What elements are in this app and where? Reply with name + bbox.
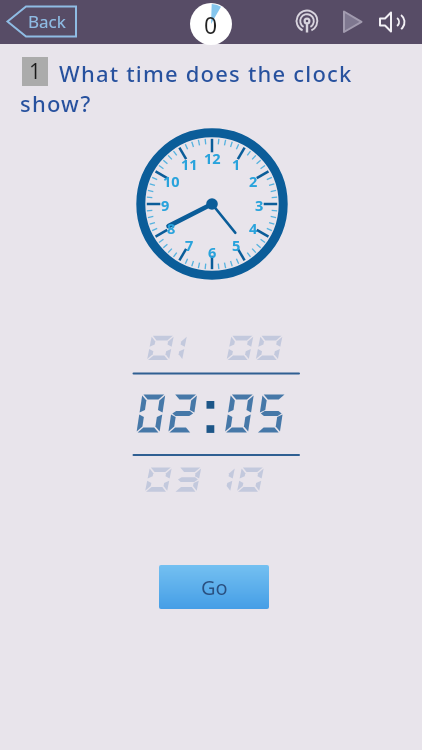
button[interactable] <box>377 8 407 38</box>
staticText: 1 <box>29 57 42 86</box>
staticText: 7 <box>185 235 194 253</box>
staticText: 0 <box>204 9 218 40</box>
staticText: Go <box>201 574 228 601</box>
staticText: Back <box>28 10 66 33</box>
button[interactable] <box>341 10 364 33</box>
staticText: 3 <box>255 195 264 213</box>
button[interactable] <box>294 9 320 35</box>
staticText: 2 <box>249 171 258 189</box>
staticText: 4 <box>249 218 258 236</box>
staticText: show? <box>20 88 92 118</box>
button[interactable]: Back <box>6 5 80 38</box>
staticText: 12 <box>204 148 221 166</box>
staticText: 9 <box>161 195 170 213</box>
staticText: 8 <box>167 218 176 236</box>
staticText: 10 <box>163 171 180 189</box>
button[interactable]: Go <box>159 565 269 609</box>
staticText: 1 <box>232 154 241 172</box>
staticText: What time does the clock <box>59 58 353 88</box>
staticText: 5 <box>232 235 241 253</box>
staticText: 6 <box>208 242 217 260</box>
staticText: 11 <box>181 154 198 172</box>
